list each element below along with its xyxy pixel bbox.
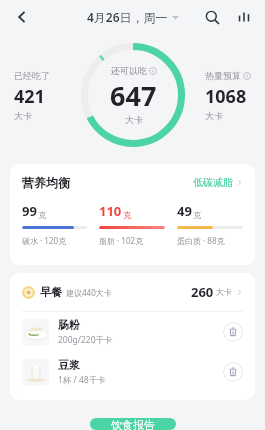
staticText: 大卡 bbox=[216, 287, 232, 297]
staticText: 脂肪 · 102克 bbox=[99, 235, 144, 246]
staticText: 还可以吃 bbox=[111, 65, 147, 76]
staticText: 建议440大卡 bbox=[66, 287, 112, 298]
staticText: 49 bbox=[177, 202, 192, 220]
staticText: 4月26日，周一 bbox=[87, 9, 168, 25]
button[interactable]: Search bbox=[199, 4, 225, 30]
staticText: 大卡 bbox=[14, 110, 32, 121]
button[interactable]: 早餐 bbox=[10, 273, 255, 311]
button[interactable]: Statistics bbox=[231, 4, 257, 30]
staticText: 饮食报告 bbox=[111, 418, 155, 430]
button[interactable]: 4月26日，周一 bbox=[87, 9, 179, 25]
staticText: 200g/220千卡 bbox=[58, 334, 113, 346]
staticText: 647 bbox=[110, 77, 157, 114]
button[interactable]: Delete 肠粉 bbox=[223, 322, 243, 342]
button[interactable]: 豆浆 bbox=[10, 352, 255, 392]
button[interactable]: Delete 豆浆 bbox=[223, 362, 243, 382]
staticText: 豆浆 bbox=[58, 358, 80, 372]
staticText: 421 bbox=[14, 84, 45, 109]
staticText: 早餐 bbox=[40, 285, 62, 299]
staticText: 1杯 / 48千卡 bbox=[58, 374, 106, 386]
staticText: 大卡 bbox=[205, 110, 223, 121]
button[interactable]: Back bbox=[8, 3, 36, 31]
button[interactable]: 肠粉 bbox=[10, 312, 255, 352]
staticText: 克 bbox=[123, 210, 131, 220]
staticText: 已经吃了 bbox=[14, 70, 50, 81]
staticText: 碳水 · 120克 bbox=[22, 235, 67, 246]
staticText: 110 bbox=[99, 202, 122, 220]
button[interactable]: 饮食报告 bbox=[90, 418, 176, 430]
staticText: 克 bbox=[38, 210, 46, 220]
staticText: 营养均衡 bbox=[22, 175, 70, 190]
staticText: 99 bbox=[22, 202, 37, 220]
staticText: 热量预算 bbox=[205, 70, 241, 81]
staticText: 260 bbox=[191, 283, 214, 301]
button[interactable]: 低碳减脂 bbox=[193, 176, 243, 189]
staticText: 1068 bbox=[205, 84, 247, 109]
staticText: 蛋白质 · 88克 bbox=[177, 235, 225, 246]
staticText: 低碳减脂 bbox=[193, 176, 233, 189]
staticText: 大卡 bbox=[125, 114, 143, 125]
staticText: 克 bbox=[193, 210, 201, 220]
staticText: 肠粉 bbox=[58, 318, 80, 332]
